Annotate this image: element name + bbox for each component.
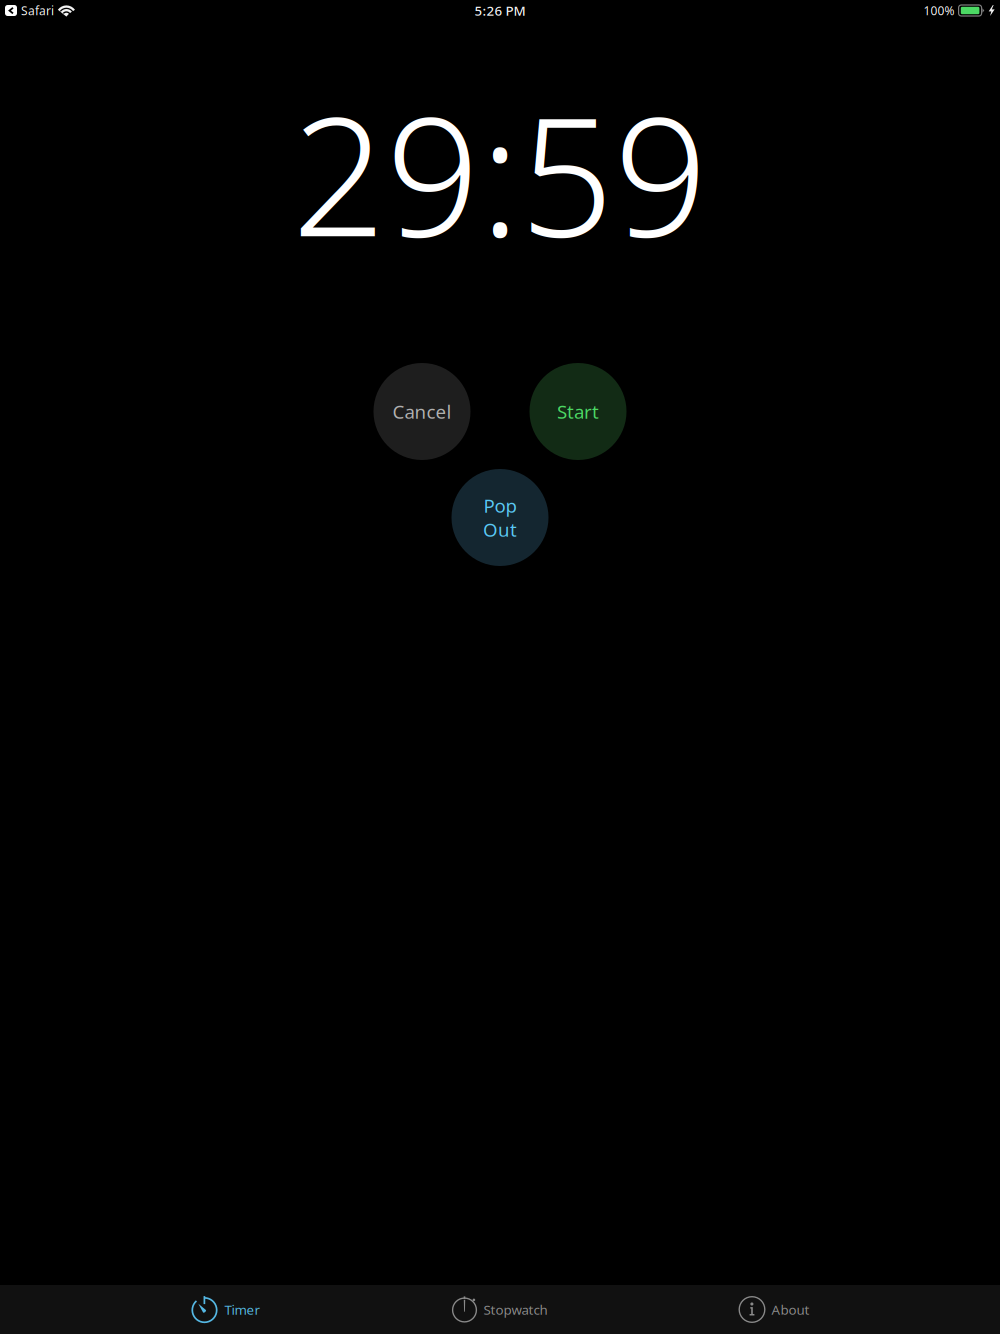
staticText: Start	[557, 399, 599, 424]
button[interactable]: Back to Safari	[0, 2, 54, 18]
staticText: Safari	[21, 2, 54, 18]
staticText: Stopwatch	[483, 1301, 547, 1318]
staticText: About	[771, 1301, 809, 1318]
button[interactable]: Pop	[451, 469, 548, 566]
staticText: Timer	[224, 1301, 260, 1318]
staticText: 29:59	[292, 64, 708, 281]
button[interactable]: Start	[529, 363, 626, 460]
button[interactable]: Timer	[190, 1285, 260, 1334]
staticText: Out	[483, 517, 517, 542]
staticText: 100%	[923, 2, 954, 18]
button[interactable]: Cancel	[373, 363, 470, 460]
staticText: 5:26 PM	[474, 2, 525, 19]
staticText: Cancel	[392, 399, 451, 424]
button[interactable]: Stopwatch	[451, 1285, 547, 1334]
button[interactable]: About	[738, 1285, 809, 1334]
staticText: Pop	[483, 493, 516, 518]
